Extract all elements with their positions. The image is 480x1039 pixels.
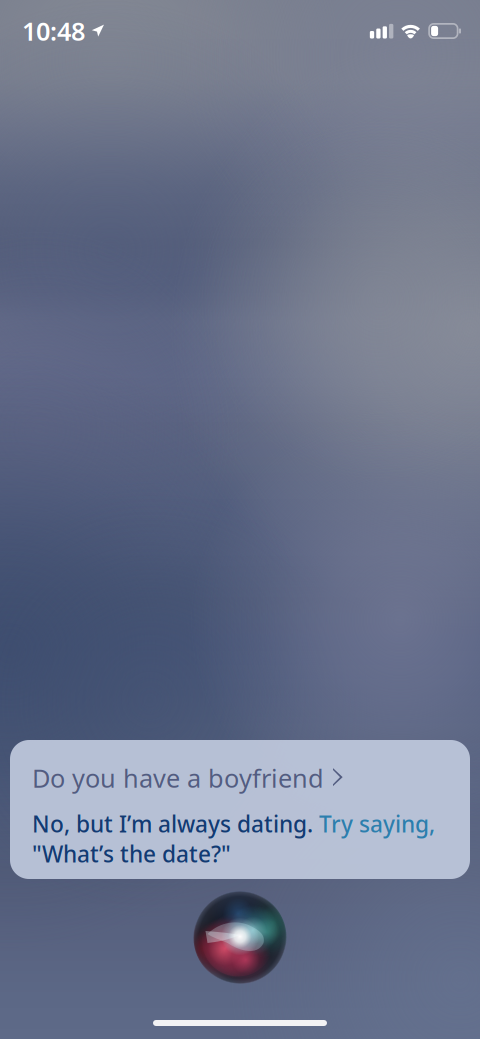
- staticText: Do you have a boyfriend: [32, 761, 324, 795]
- button[interactable]: Do you have a boyfriend: [32, 761, 452, 795]
- staticText: 10:48: [22, 14, 85, 48]
- staticText: No, but I’m always dating. Try saying, "…: [32, 809, 435, 869]
- button[interactable]: Siri: [193, 891, 286, 984]
